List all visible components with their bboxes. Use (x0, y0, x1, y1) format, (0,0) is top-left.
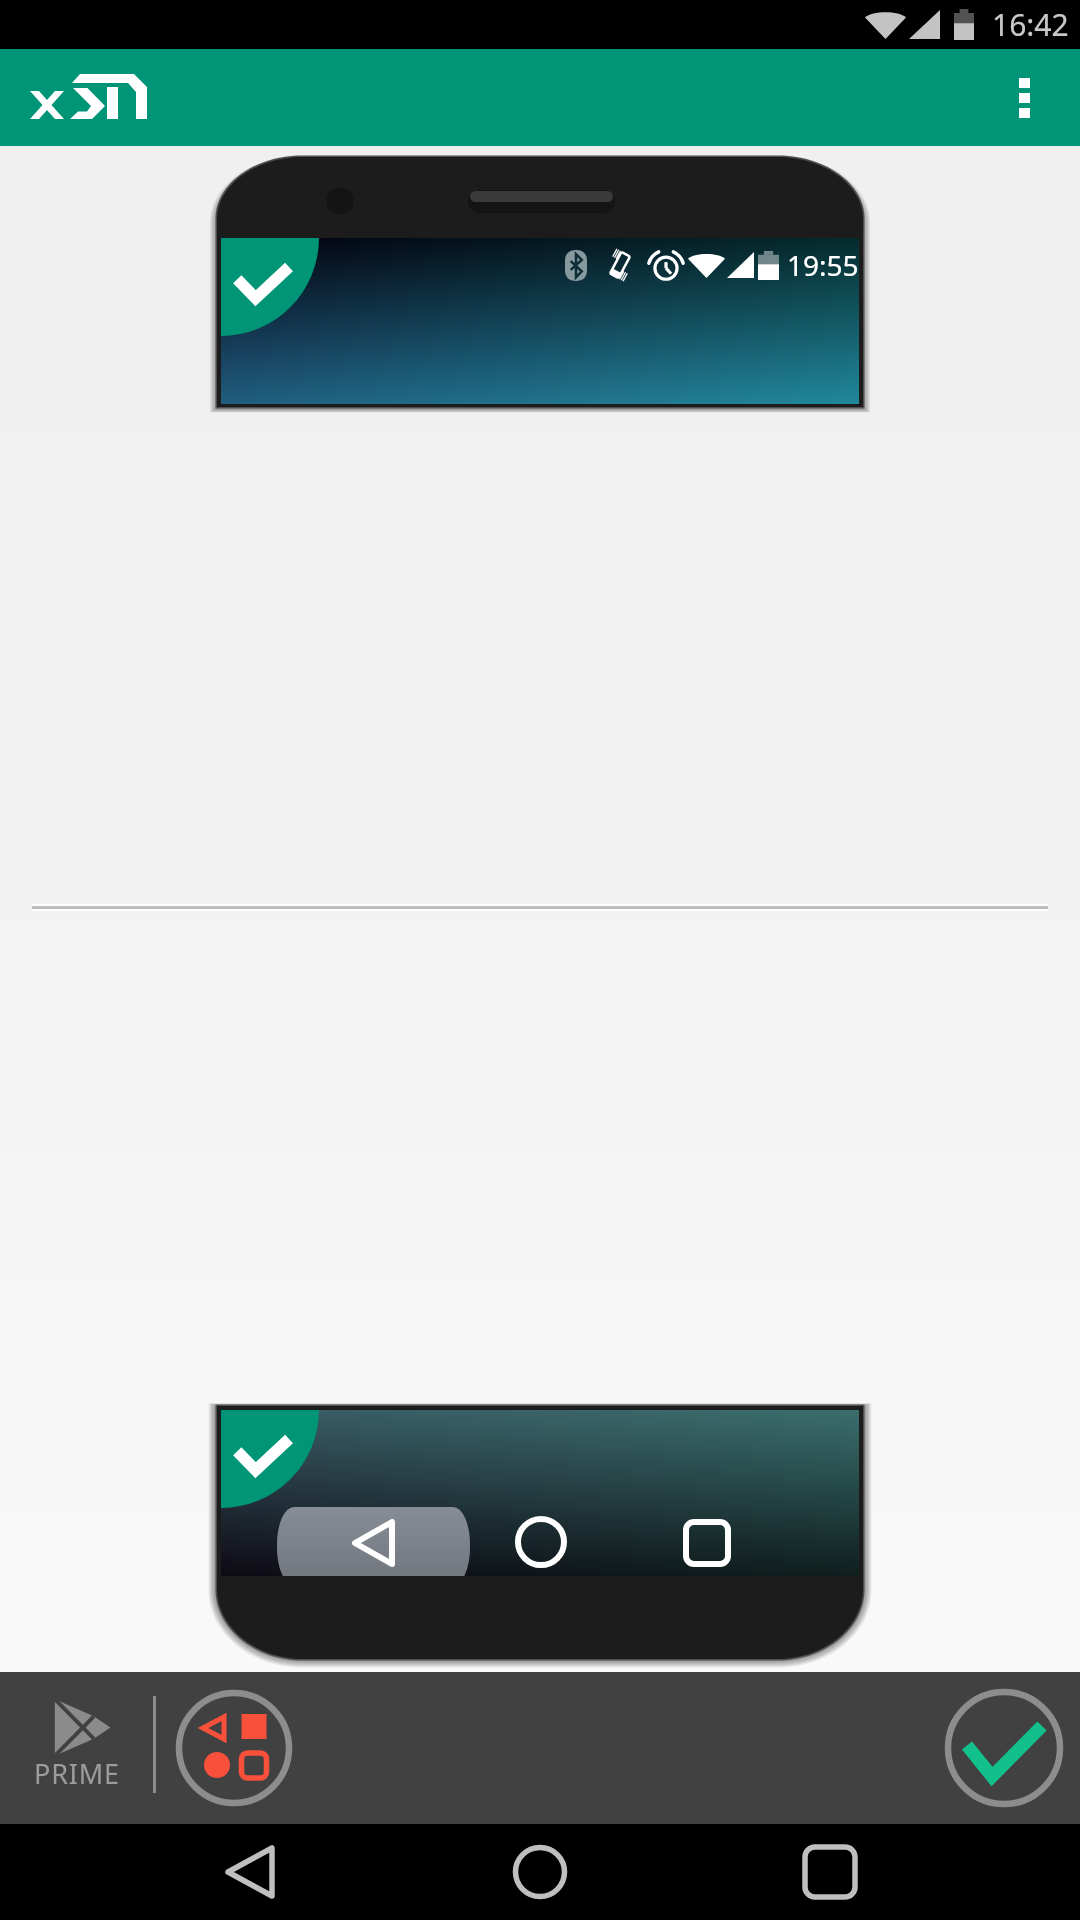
staticText: 16:42 (992, 4, 1069, 45)
button[interactable]: Prime (28, 1688, 126, 1796)
button[interactable]: Recents (770, 1824, 890, 1920)
button[interactable]: Back (190, 1824, 310, 1920)
staticText: PRIME (34, 1755, 120, 1792)
staticText: 19:55 (787, 246, 859, 284)
button[interactable]: App shortcuts (172, 1686, 296, 1810)
button[interactable]: Home (480, 1824, 600, 1920)
button[interactable]: Apply (941, 1685, 1067, 1811)
button[interactable]: More options (968, 49, 1080, 146)
